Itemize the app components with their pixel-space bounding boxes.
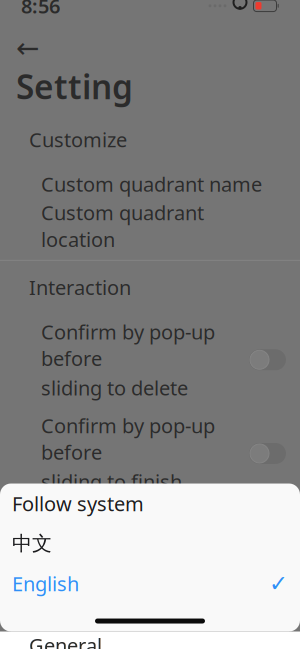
staticText: Custom quadrant name (41, 171, 262, 197)
staticText: General (29, 632, 102, 649)
staticText: Security (29, 526, 103, 552)
staticText: Custom quadrant location (41, 199, 204, 252)
staticText: Confirm by pop-up before (41, 318, 215, 372)
staticText: ← (16, 32, 39, 64)
button[interactable]: Back (0, 33, 60, 63)
button[interactable]: Custom quadrant location (0, 215, 300, 237)
staticText: Setting (16, 64, 133, 108)
button[interactable]: Follow system (0, 483, 300, 523)
staticText: Confirm by pop-up before (41, 412, 215, 465)
staticText: 中文 (12, 531, 52, 556)
staticText: Customize (29, 126, 127, 153)
staticText: 8:56 (21, 0, 60, 19)
button[interactable]: Confirm by pop-up before (0, 412, 300, 495)
staticText: Follow system (12, 490, 144, 517)
staticText: sliding to finish (41, 468, 182, 495)
button[interactable]: Using password (0, 569, 300, 596)
staticText: ✓ (269, 571, 288, 596)
staticText: Interaction (29, 274, 131, 300)
button[interactable]: English (0, 563, 300, 603)
button[interactable]: 中文 (0, 523, 300, 563)
staticText: sliding to delete (41, 375, 188, 401)
staticText: English (12, 570, 79, 597)
staticText: Using password (41, 569, 191, 596)
button[interactable]: Confirm by pop-up before (0, 318, 300, 401)
button[interactable]: Custom quadrant name (0, 173, 300, 195)
